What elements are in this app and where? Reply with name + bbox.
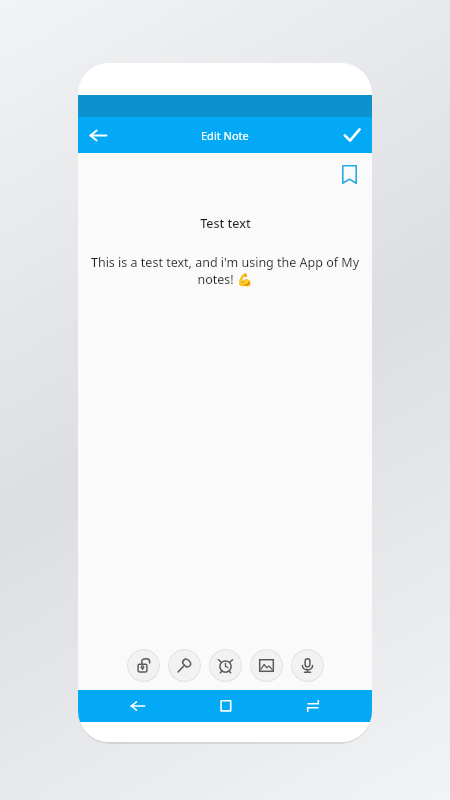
button[interactable]: Pin note bbox=[168, 649, 201, 682]
button[interactable]: Save note bbox=[332, 117, 372, 153]
button[interactable]: Add image bbox=[250, 649, 283, 682]
staticText: Edit Note bbox=[201, 128, 249, 143]
button[interactable]: Bookmark bbox=[332, 157, 366, 191]
staticText: This is a test text, and i'm using the A… bbox=[90, 254, 360, 288]
button[interactable]: Back bbox=[110, 690, 166, 722]
button[interactable]: Voice note bbox=[291, 649, 324, 682]
button[interactable]: Set reminder bbox=[209, 649, 242, 682]
button[interactable]: Lock note bbox=[127, 649, 160, 682]
button[interactable]: Home bbox=[197, 690, 253, 722]
button[interactable]: Recent apps bbox=[285, 690, 341, 722]
staticText: Test text bbox=[200, 215, 251, 232]
button[interactable]: Back bbox=[78, 117, 118, 153]
